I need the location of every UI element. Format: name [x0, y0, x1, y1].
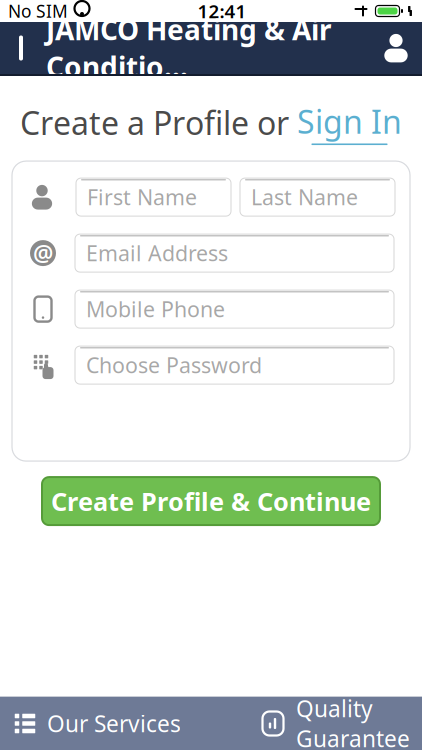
button[interactable]: Sign In	[297, 100, 402, 145]
button[interactable]: Account	[370, 22, 422, 74]
staticText: Last Name	[251, 183, 358, 211]
staticText: @	[33, 238, 53, 268]
staticText: No SIM	[8, 0, 68, 22]
staticText: Mobile Phone	[86, 295, 225, 323]
button[interactable]: Create Profile & Continue	[42, 477, 380, 525]
button[interactable]: Mobile Phone	[75, 290, 394, 328]
staticText: 12:41	[197, 0, 246, 23]
button[interactable]: First Name	[76, 178, 231, 216]
button[interactable]: Last Name	[240, 178, 395, 216]
button[interactable]: Choose Password	[75, 346, 394, 384]
staticText: Create a Profile or	[20, 101, 297, 144]
button[interactable]: Quality Guarantee	[249, 697, 422, 750]
button[interactable]: Back	[0, 22, 46, 74]
button[interactable]: Email Address	[75, 234, 394, 272]
staticText: Sign In	[297, 100, 402, 142]
staticText: Email Address	[86, 239, 228, 267]
staticText: Quality Guarantee	[296, 693, 410, 750]
staticText: First Name	[87, 183, 197, 211]
staticText: Choose Password	[86, 351, 262, 379]
staticText: JAMCO Heating & Air Conditio...	[46, 11, 332, 85]
staticText: Create Profile & Continue	[51, 484, 371, 518]
staticText: Our Services	[47, 708, 181, 738]
button[interactable]: Our Services	[0, 697, 195, 750]
